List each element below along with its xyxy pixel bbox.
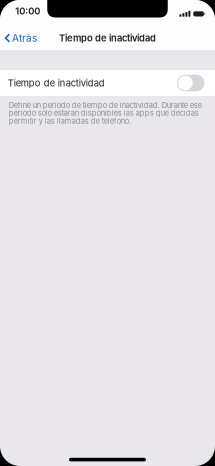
button[interactable]: Atrás xyxy=(0,26,42,50)
staticText: Atrás xyxy=(12,32,37,44)
staticText: Tiempo de inactividad xyxy=(8,77,105,89)
button[interactable]: Tiempo de inactividad xyxy=(0,70,215,96)
staticText: Tiempo de inactividad xyxy=(59,32,156,44)
staticText: 10:00 xyxy=(15,5,40,17)
staticText: Define un periodo de tiempo de inactivid… xyxy=(9,101,202,125)
